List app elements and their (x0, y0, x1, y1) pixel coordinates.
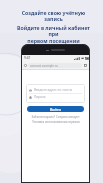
staticText: Пароль (34, 95, 46, 99)
staticText: Введите адрес эл. почты (34, 88, 73, 92)
staticText: Войдите в личный кабинет при первом посе… (16, 24, 91, 45)
button[interactable]: Tabs (84, 64, 87, 67)
staticText: account.example.ru (30, 64, 58, 68)
button[interactable]: Address bar (28, 63, 82, 68)
button[interactable]: Забыли пароль? Создать аккаунт (31, 115, 80, 119)
staticText: 9:41 (24, 56, 31, 60)
button[interactable]: Войти (27, 106, 84, 112)
staticText: Создайте свою учётную запись (16, 9, 91, 23)
staticText: Забыли пароль? Создать аккаунт (31, 115, 80, 119)
button[interactable]: Введите адрес эл. почты (29, 87, 82, 93)
button[interactable]: Пароль (29, 94, 82, 100)
button[interactable]: Условия использования сервиса (32, 120, 80, 124)
staticText: Условия использования сервиса (32, 120, 80, 124)
staticText: Войти (50, 107, 61, 112)
